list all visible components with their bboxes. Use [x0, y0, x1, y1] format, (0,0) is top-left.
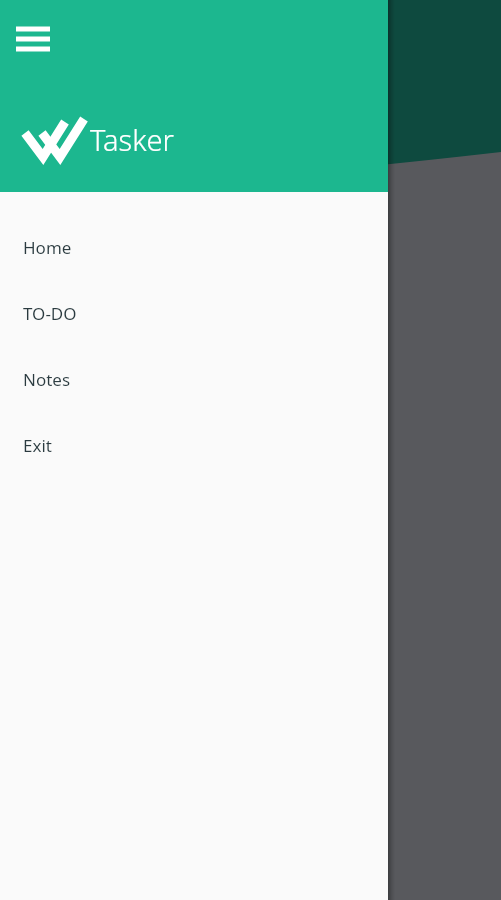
button[interactable]: Notes — [0, 346, 388, 412]
staticText: Exit — [23, 434, 52, 457]
button[interactable]: Exit — [0, 412, 388, 478]
staticText: TO-DO — [23, 302, 77, 325]
staticText: Home — [23, 236, 72, 259]
button[interactable]: TO-DO — [0, 280, 388, 346]
button[interactable]: Home — [0, 214, 388, 280]
staticText: Notes — [23, 368, 71, 391]
button[interactable]: Open navigation menu — [10, 18, 56, 62]
staticText: Tasker — [90, 120, 174, 159]
